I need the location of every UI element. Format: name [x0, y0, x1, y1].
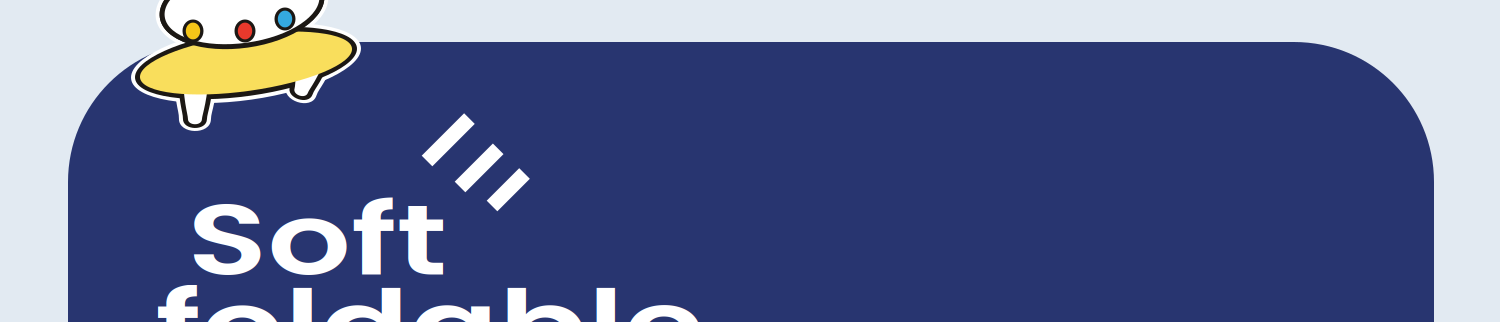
- staticText: Soft: [219, 171, 414, 309]
- staticText: foldable: [223, 258, 636, 322]
